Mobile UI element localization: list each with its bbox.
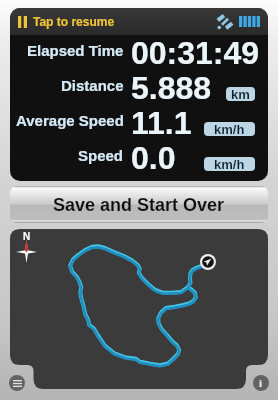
staticText: i [259, 377, 263, 389]
staticText: Distance [61, 77, 124, 94]
button[interactable]: Menu [9, 375, 25, 391]
staticText: N [23, 231, 31, 242]
staticText: Save and Start Over [53, 195, 225, 215]
other: Signal strength [239, 16, 260, 27]
staticText: km/h [214, 157, 245, 171]
staticText: km/h [214, 122, 245, 136]
staticText: 11.1 [131, 105, 192, 140]
staticText: Elapsed Time [27, 42, 124, 59]
staticText: 0.0 [131, 140, 176, 175]
staticText: Speed [78, 147, 124, 164]
staticText: 00:31:49 [131, 35, 260, 70]
other: GPS satellite [216, 14, 234, 30]
staticText: 5.888 [131, 70, 212, 105]
button[interactable]: Save and Start Over [10, 186, 268, 223]
staticText: km [231, 87, 250, 101]
button[interactable]: Tap to resume [15, 11, 118, 32]
staticText: Average Speed [16, 112, 124, 129]
button[interactable]: Info [253, 375, 269, 391]
staticText: Tap to resume [33, 15, 115, 28]
